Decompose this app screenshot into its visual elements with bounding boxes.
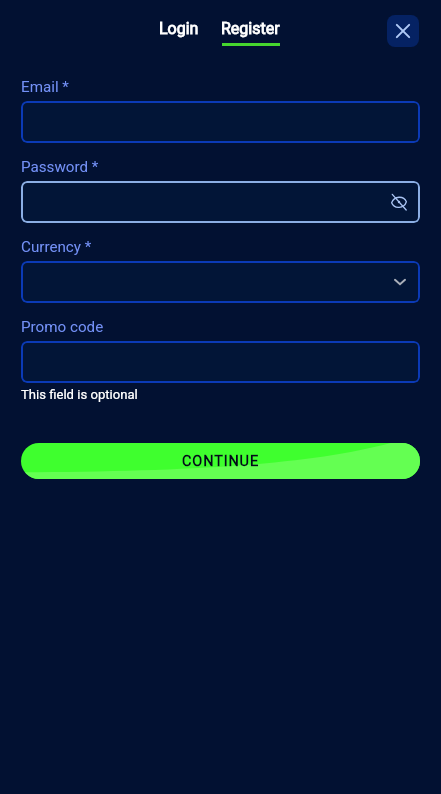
other: Select currency bbox=[388, 270, 412, 294]
staticText: Email * bbox=[21, 78, 69, 96]
button[interactable]: CONTINUE bbox=[21, 443, 420, 479]
staticText: Promo code bbox=[21, 318, 104, 336]
staticText: This field is optional bbox=[21, 387, 138, 402]
button[interactable] bbox=[21, 341, 420, 383]
button[interactable]: Close bbox=[387, 15, 419, 47]
staticText: CONTINUE bbox=[182, 453, 259, 470]
button[interactable]: Show password bbox=[386, 189, 412, 215]
button[interactable]: Register bbox=[221, 16, 280, 49]
button[interactable]: Show password bbox=[21, 181, 420, 223]
button[interactable] bbox=[21, 101, 420, 143]
button[interactable]: Login bbox=[154, 16, 204, 41]
staticText: Login bbox=[159, 19, 199, 38]
button[interactable]: Select currency bbox=[21, 261, 420, 303]
staticText: Register bbox=[221, 19, 280, 38]
staticText: Password * bbox=[21, 158, 99, 176]
staticText: Currency * bbox=[21, 238, 92, 256]
